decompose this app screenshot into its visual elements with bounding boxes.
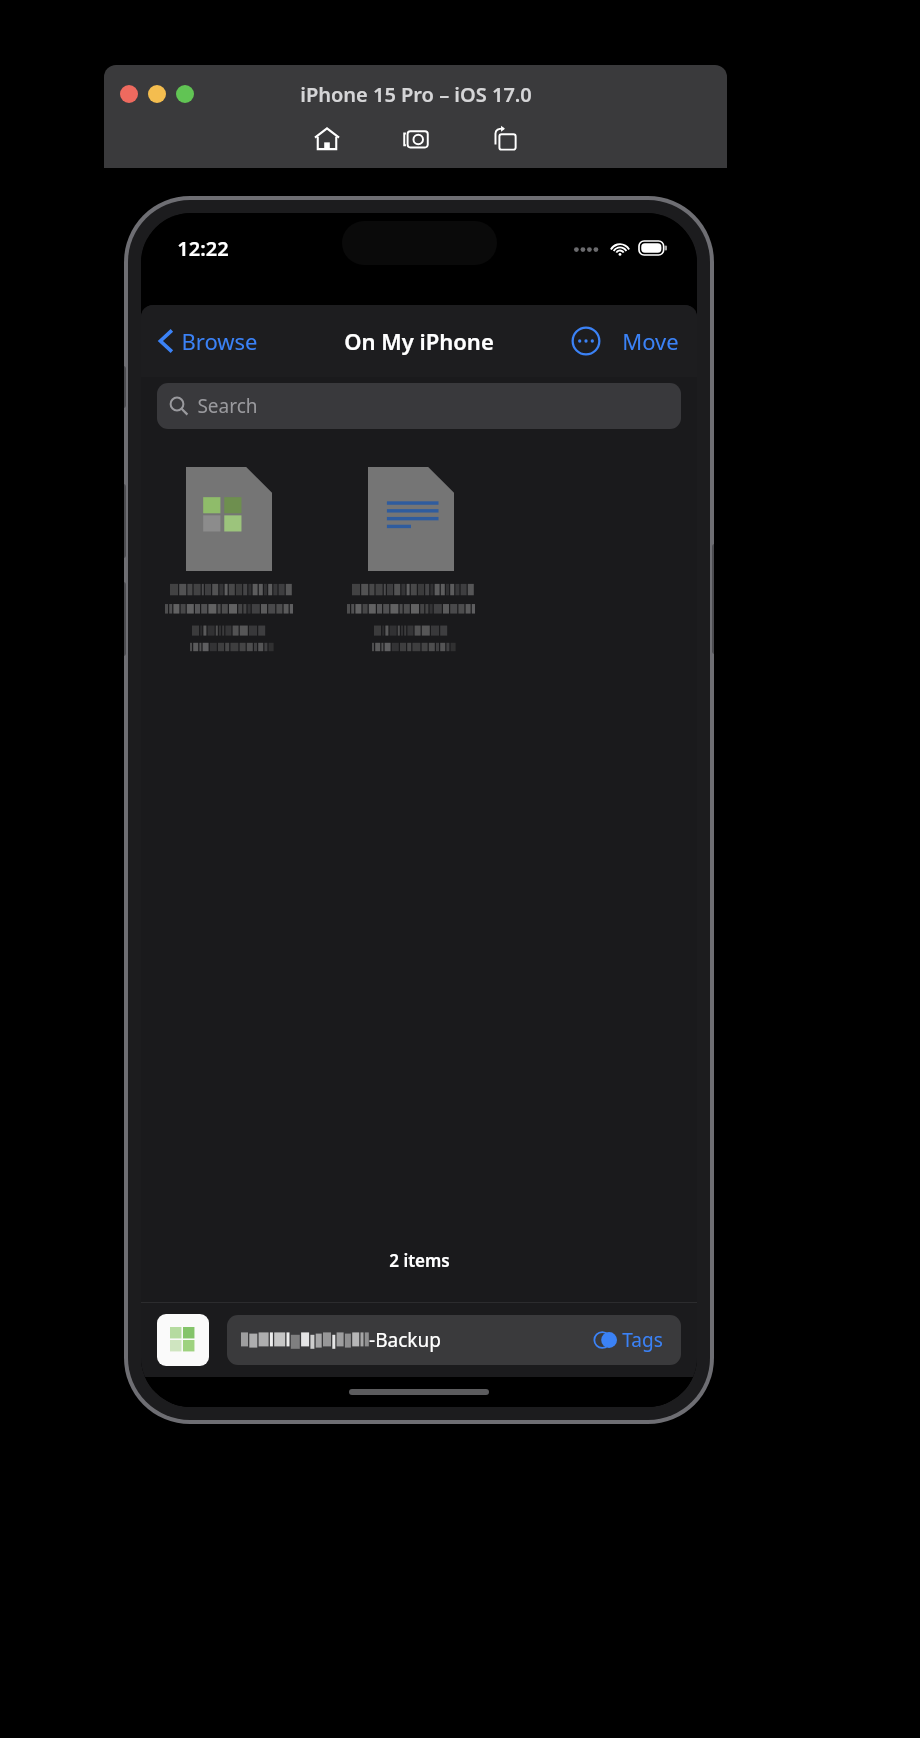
button[interactable]: More options	[568, 323, 604, 359]
staticText: Tags	[622, 1327, 663, 1353]
button[interactable]	[165, 465, 293, 658]
staticText: 12:22	[177, 235, 229, 262]
button[interactable]: Screenshot	[396, 119, 436, 159]
button[interactable]: Move	[618, 320, 683, 362]
staticText: -Backup	[369, 1327, 441, 1353]
staticText: 2 items	[389, 1249, 450, 1272]
button[interactable]: Maximize	[176, 85, 194, 103]
button[interactable]: Close	[120, 85, 138, 103]
button[interactable]: Minimize	[148, 85, 166, 103]
staticText: iPhone 15 Pro – iOS 17.0	[300, 81, 532, 108]
button[interactable]	[347, 465, 475, 658]
button[interactable]: -Backup	[227, 1315, 681, 1365]
button[interactable]: Tags	[591, 1323, 667, 1357]
button[interactable]: App icon	[157, 1314, 209, 1366]
staticText: Move	[622, 326, 679, 356]
button[interactable]: Search	[157, 383, 681, 429]
button[interactable]: Home	[307, 119, 347, 159]
button[interactable]: Rotate	[485, 119, 525, 159]
button[interactable]: Browse	[153, 320, 264, 362]
staticText: On My iPhone	[344, 326, 494, 356]
staticText: Browse	[181, 326, 258, 356]
staticText: Search	[197, 393, 258, 419]
